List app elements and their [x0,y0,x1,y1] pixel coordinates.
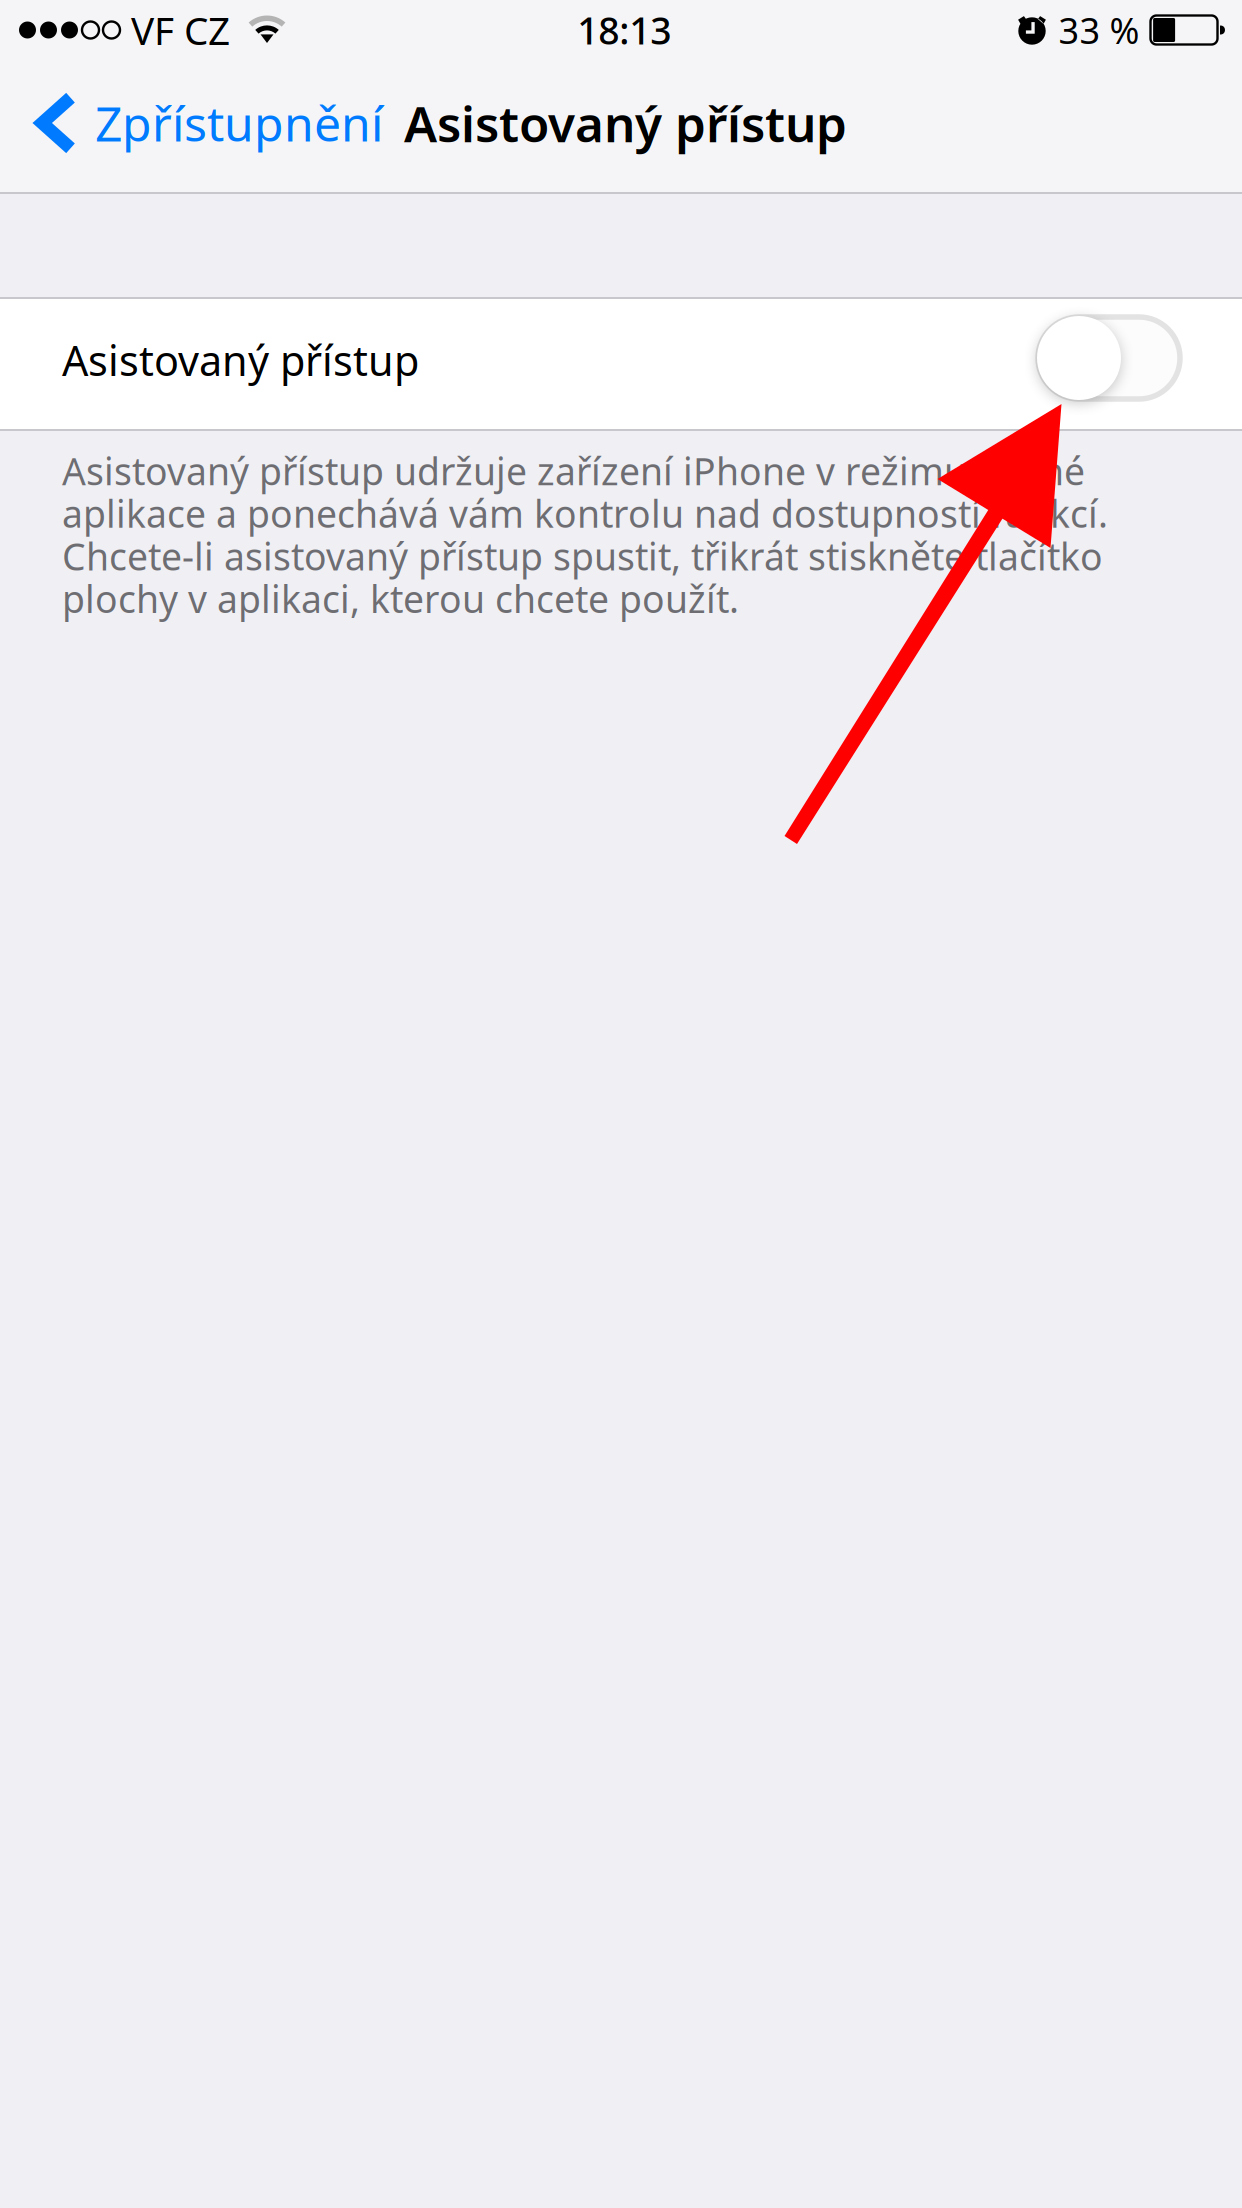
staticText: Asistovaný přístup [404,90,847,156]
staticText: Asistovaný přístup udržuje zařízení iPho… [62,446,1108,623]
staticText: 18:13 [577,5,671,55]
staticText: 33 % [1058,6,1139,54]
staticText: VF CZ [131,4,230,56]
button[interactable]: Asistovaný přístup [0,299,1242,429]
button[interactable]: Asistovaný přístup, vypnuto [1038,319,1180,401]
staticText: Zpřístupnění [95,91,383,155]
staticText: Asistovaný přístup [62,333,419,387]
button[interactable]: Zpět na Zpřístupnění [0,57,404,189]
